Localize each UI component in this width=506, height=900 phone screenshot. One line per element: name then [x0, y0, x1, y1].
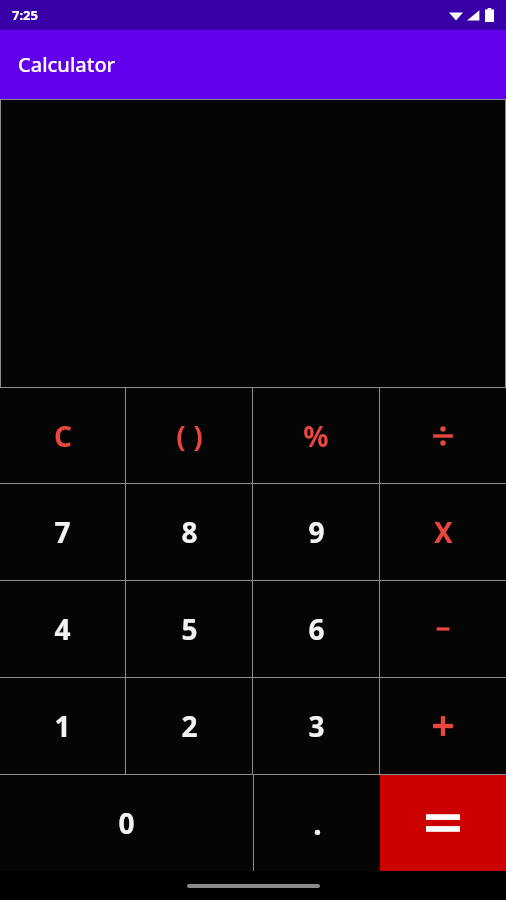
staticText: 4 [54, 610, 71, 648]
staticText: C [54, 417, 72, 455]
button[interactable]: C [0, 388, 125, 483]
button[interactable]: 6 [253, 581, 379, 677]
staticText: 7 [54, 513, 71, 551]
button[interactable]: 1 [0, 678, 125, 774]
button[interactable]: . [254, 775, 380, 871]
staticText: 0 [118, 804, 135, 842]
button[interactable]: 7 [0, 484, 125, 580]
staticText: Calculator [18, 51, 116, 78]
staticText: X [434, 513, 453, 551]
button[interactable]: 9 [253, 484, 379, 580]
staticText: 5 [181, 610, 198, 648]
button[interactable]: 4 [0, 581, 125, 677]
staticText: % [303, 417, 329, 455]
button[interactable]: 5 [126, 581, 252, 677]
staticText: 1 [54, 707, 71, 745]
button[interactable]: X [380, 484, 506, 580]
staticText: 9 [308, 513, 325, 551]
staticText: ( ) [176, 417, 203, 455]
button[interactable]: Equals [380, 775, 506, 871]
button[interactable]: 2 [126, 678, 252, 774]
button[interactable]: % [253, 388, 379, 483]
staticText: 8 [181, 513, 198, 551]
button[interactable]: Operator [380, 581, 506, 677]
button[interactable]: Operator [380, 678, 506, 774]
button[interactable]: 8 [126, 484, 252, 580]
staticText: 6 [308, 610, 325, 648]
staticText: 2 [181, 707, 198, 745]
button[interactable]: ( ) [126, 388, 252, 483]
staticText: 3 [308, 707, 325, 745]
button[interactable]: Operator [380, 388, 506, 483]
staticText: . [313, 803, 322, 844]
button[interactable]: 3 [253, 678, 379, 774]
button[interactable]: 0 [0, 775, 253, 871]
staticText: 7:25 [12, 6, 38, 24]
